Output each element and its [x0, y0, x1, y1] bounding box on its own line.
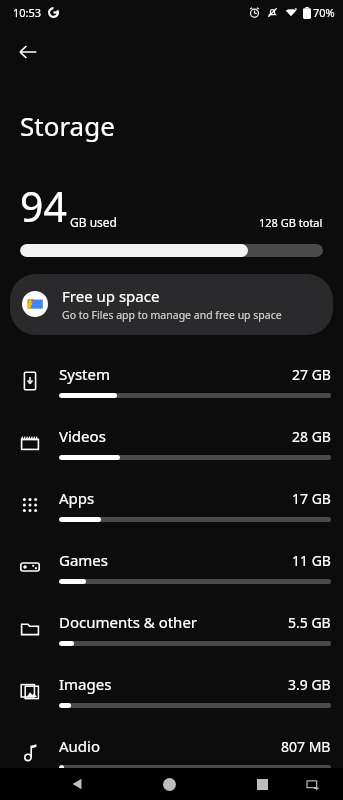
- staticText: 5.5 GB: [288, 613, 331, 632]
- button[interactable]: System: [0, 350, 343, 412]
- staticText: Videos: [59, 426, 106, 446]
- staticText: 94: [20, 178, 67, 234]
- staticText: 70%: [313, 5, 335, 20]
- staticText: Audio: [59, 736, 101, 756]
- staticText: Apps: [59, 488, 95, 508]
- staticText: 10:53: [13, 5, 42, 20]
- button[interactable]: Back: [60, 768, 94, 800]
- staticText: GB used: [70, 214, 117, 230]
- staticText: 17 GB: [292, 489, 331, 508]
- button[interactable]: Documents & other: [0, 598, 343, 660]
- staticText: 28 GB: [292, 427, 331, 446]
- button[interactable]: Videos: [0, 412, 343, 474]
- button[interactable]: Free up space: [10, 274, 333, 335]
- staticText: 3.9 GB: [288, 675, 331, 694]
- staticText: Go to Files app to manage and free up sp…: [62, 308, 282, 322]
- staticText: Images: [59, 674, 112, 694]
- staticText: System: [59, 364, 110, 384]
- button[interactable]: Recents: [245, 768, 279, 800]
- button[interactable]: Apps: [0, 474, 343, 536]
- button[interactable]: Rotate screen: [295, 768, 329, 800]
- button[interactable]: Back: [6, 30, 50, 74]
- staticText: 807 MB: [281, 737, 331, 756]
- staticText: Storage: [20, 108, 115, 143]
- staticText: 27 GB: [292, 365, 331, 384]
- staticText: Documents & other: [59, 612, 198, 632]
- button[interactable]: Games: [0, 536, 343, 598]
- button[interactable]: Images: [0, 660, 343, 722]
- staticText: 11 GB: [292, 551, 331, 570]
- button[interactable]: Home: [152, 768, 186, 800]
- staticText: Free up space: [62, 286, 160, 306]
- staticText: 128 GB total: [259, 215, 323, 230]
- button[interactable]: Audio: [0, 722, 343, 784]
- staticText: Games: [59, 550, 109, 570]
